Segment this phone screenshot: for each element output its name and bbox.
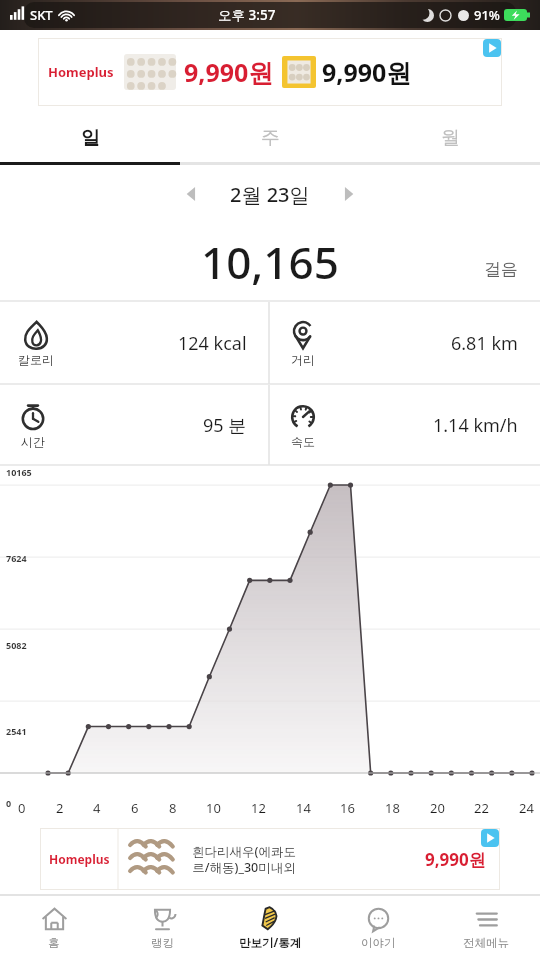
staticText: 시간 (21, 434, 45, 449)
staticText: 8 (169, 799, 177, 817)
button[interactable]: 홈 (0, 896, 108, 960)
button[interactable]: 속도 (270, 385, 540, 465)
button[interactable]: 일 (0, 114, 180, 162)
staticText: 20 (430, 799, 445, 817)
staticText: 오후 3:57 (218, 6, 276, 24)
staticText: 만보기/통계 (239, 935, 302, 951)
button[interactable]: 월 (360, 114, 540, 162)
staticText: 월 (441, 126, 460, 150)
button[interactable]: 칼로리 (0, 302, 269, 384)
staticText: 1.14 km/h (433, 413, 518, 438)
button[interactable]: Homeplus (40, 828, 500, 890)
staticText: SKT (30, 6, 53, 24)
staticText: 홈 (48, 936, 60, 950)
staticText: 6 (131, 799, 139, 817)
staticText: 2월 23일 (230, 181, 310, 208)
button[interactable]: 전체메뉴 (432, 896, 540, 960)
staticText: 10165 (6, 466, 32, 478)
staticText: 95 분 (203, 413, 247, 438)
staticText: 일 (81, 126, 100, 150)
button[interactable]: 만보기/통계 (216, 896, 324, 960)
button[interactable]: 랭킹 (108, 896, 216, 960)
staticText: 91% (474, 6, 500, 24)
button[interactable]: 거리 (270, 302, 540, 384)
staticText: 18 (385, 799, 400, 817)
staticText: 거리 (291, 352, 315, 367)
staticText: 12 (251, 799, 266, 817)
staticText: 0 (6, 797, 12, 809)
staticText: 이야기 (361, 936, 396, 950)
staticText: 속도 (291, 434, 315, 449)
button[interactable]: Homeplus (38, 38, 502, 106)
button[interactable]: 주 (180, 114, 360, 162)
button[interactable]: Previous day (172, 174, 212, 214)
staticText: 랭킹 (151, 936, 174, 950)
button[interactable]: 시간 (0, 385, 269, 465)
staticText: Homeplus (49, 851, 110, 867)
staticText: 16 (340, 799, 355, 817)
staticText: 10,165 (201, 232, 339, 292)
staticText: 6.81 km (451, 331, 518, 356)
staticText: 7624 (6, 552, 27, 564)
staticText: Homeplus (48, 63, 114, 81)
staticText: 124 kcal (178, 331, 247, 356)
staticText: 주 (261, 126, 280, 150)
staticText: 22 (474, 799, 489, 817)
staticText: 2541 (6, 725, 27, 737)
staticText: 14 (296, 799, 311, 817)
staticText: 9,990원 (322, 55, 412, 89)
staticText: 걸음 (484, 259, 518, 280)
staticText: 2 (56, 799, 64, 817)
staticText: 9,990원 (425, 848, 486, 871)
staticText: 4 (93, 799, 101, 817)
staticText: 0 (18, 799, 26, 817)
staticText: 9,990원 (184, 55, 274, 89)
staticText: 칼로리 (18, 352, 54, 367)
staticText: 흰다리새우(에콰도르/해동)_30미내외 (185, 843, 303, 875)
staticText: 전체메뉴 (463, 936, 509, 950)
button[interactable]: Next day (328, 174, 368, 214)
staticText: 10 (206, 799, 221, 817)
staticText: 5082 (6, 639, 27, 651)
button[interactable]: 이야기 (324, 896, 432, 960)
staticText: 24 (519, 799, 534, 817)
